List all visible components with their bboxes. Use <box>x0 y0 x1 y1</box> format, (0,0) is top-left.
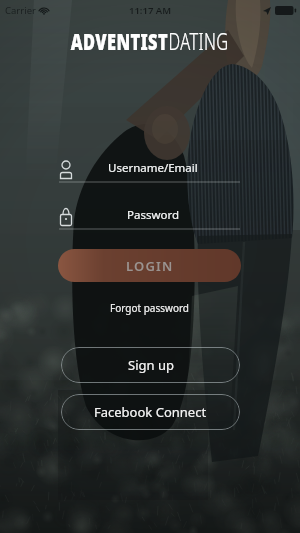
staticText: Facebook Connect <box>94 403 207 421</box>
staticText: ADVENTIST <box>71 25 169 56</box>
staticText: Forgot password <box>110 301 190 315</box>
staticText: DATING <box>168 25 229 56</box>
staticText: Carrier <box>5 4 36 17</box>
staticText: Username/Email <box>108 160 198 176</box>
button[interactable]: Sign up <box>61 347 240 383</box>
button[interactable]: Facebook Connect <box>61 394 240 430</box>
staticText: Password <box>127 207 180 223</box>
staticText: 11:17 AM <box>129 4 172 17</box>
staticText: Sign up <box>128 356 174 374</box>
button[interactable]: Forgot password <box>100 297 200 319</box>
staticText: LOGIN <box>126 257 174 275</box>
button[interactable]: LOGIN <box>58 249 241 282</box>
